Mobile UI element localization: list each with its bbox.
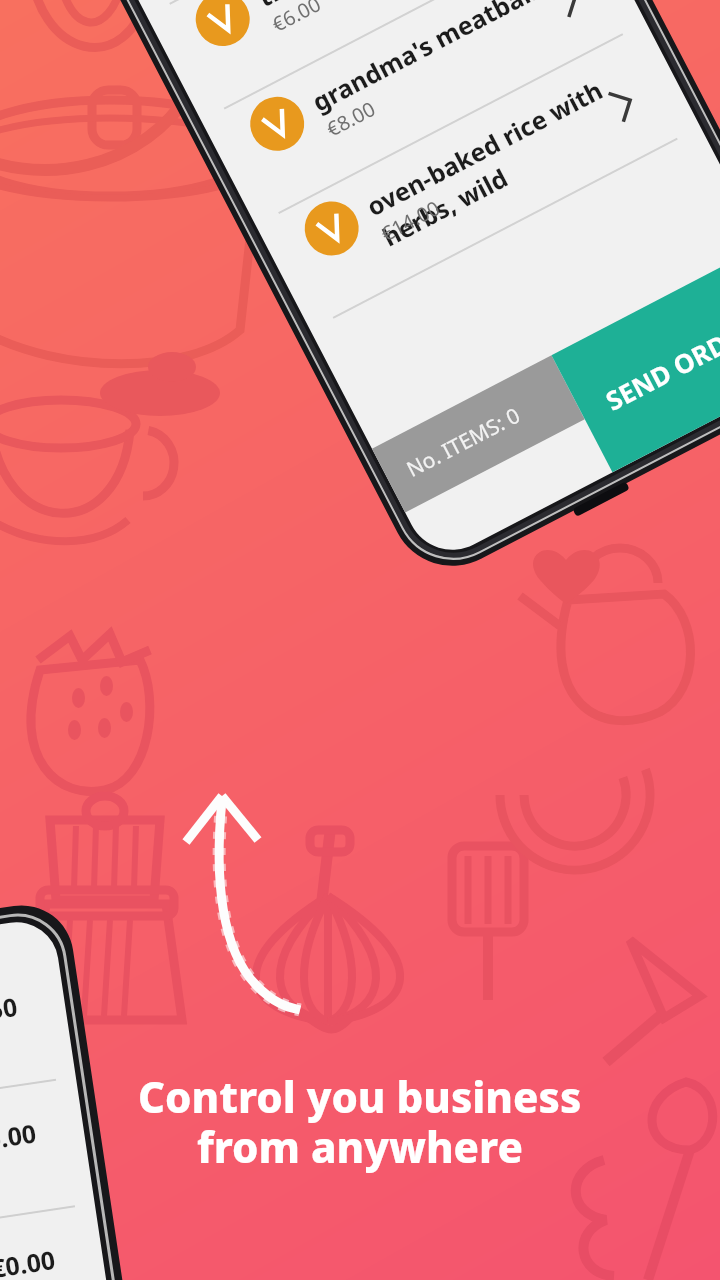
button[interactable]: Control you business from anywhere promo (0, 0, 720, 1280)
